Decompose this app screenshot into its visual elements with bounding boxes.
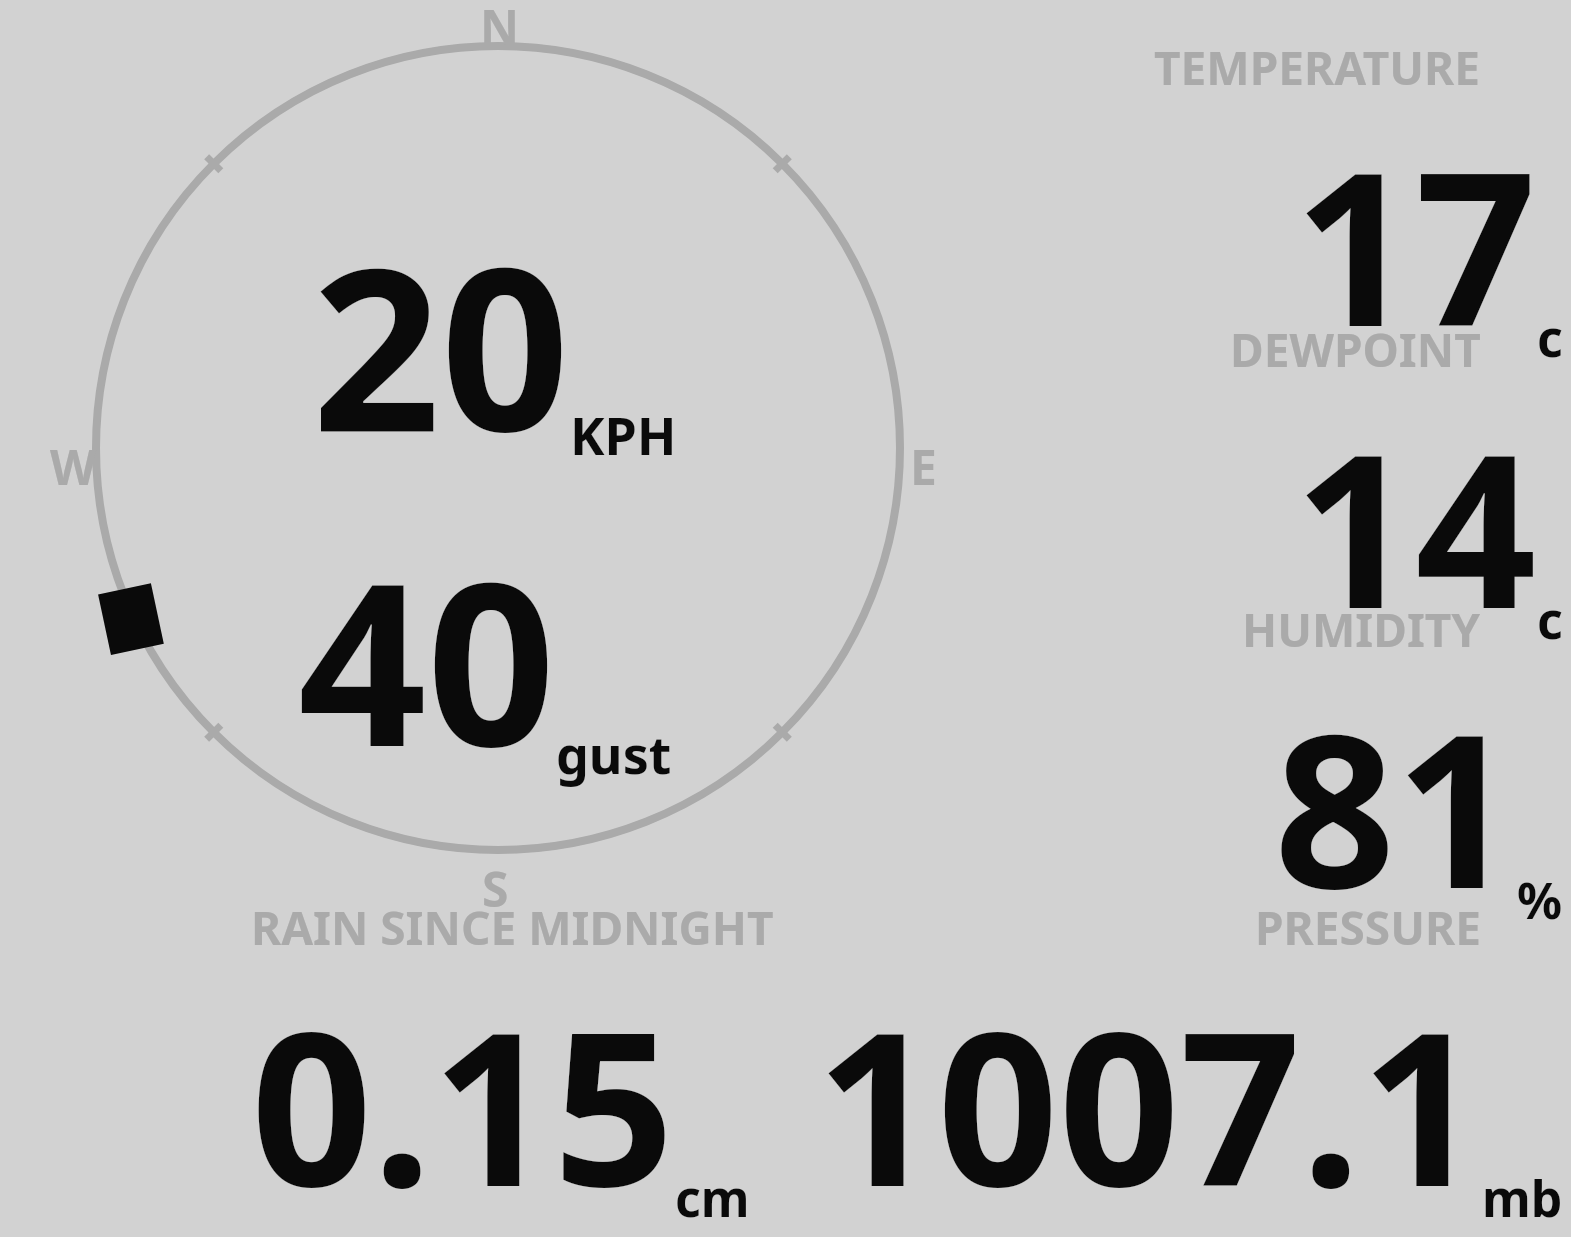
staticText: S [482,856,509,921]
staticText: DEWPOINT [1230,318,1481,381]
staticText: PRESSURE [1255,896,1481,959]
staticText: 81 [1274,661,1517,950]
staticText: cm [675,1164,750,1232]
staticText: 14 [1294,381,1537,670]
button[interactable]: DEWPOINT [1294,318,1563,670]
staticText: gust [556,718,672,789]
staticText: 17 [1294,99,1537,388]
staticText: E [910,434,937,499]
staticText: 20 [312,190,570,496]
staticText: TEMPERATURE [1154,36,1481,99]
staticText: HUMIDITY [1242,598,1481,661]
button[interactable]: PRESSURE [816,896,1563,1237]
button[interactable]: Wind direction compass [90,42,910,856]
button[interactable]: RAIN SINCE MIDNIGHT [251,896,774,1237]
staticText: 40 [298,505,556,811]
staticText: 1007.1 [816,959,1482,1237]
staticText: KPH [570,399,677,470]
button[interactable]: 20 [312,190,677,496]
button[interactable]: 40 [298,505,672,811]
staticText: N [480,0,520,59]
staticText: W [50,434,97,499]
staticText: c [1537,586,1563,654]
staticText: % [1517,866,1563,934]
staticText: c [1537,304,1563,372]
button[interactable]: TEMPERATURE [1236,36,1563,388]
staticText: mb [1482,1164,1563,1232]
button[interactable]: HUMIDITY [1274,598,1563,950]
staticText: RAIN SINCE MIDNIGHT [251,896,774,959]
staticText: 0.15 [251,959,675,1237]
